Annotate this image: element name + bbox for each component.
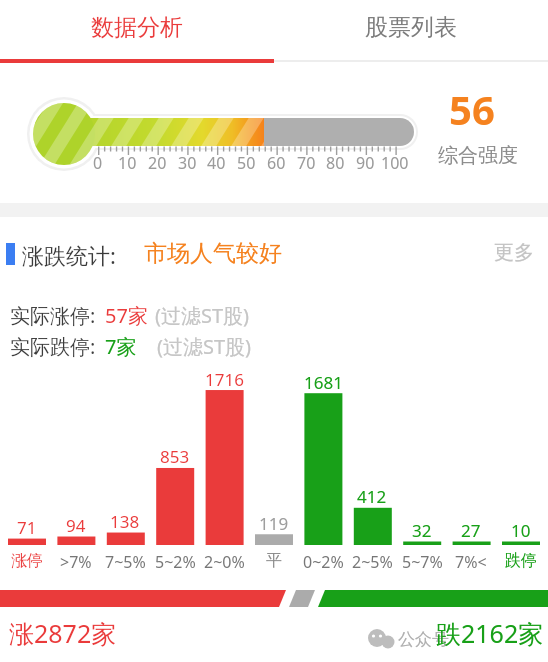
staticText: 综合强度 xyxy=(438,143,518,168)
staticText: 7家 xyxy=(105,333,137,360)
staticText: 70 xyxy=(297,152,316,174)
staticText: 100 xyxy=(381,152,409,174)
staticText: 94 xyxy=(66,514,86,537)
staticText: 40 xyxy=(207,152,226,174)
staticText: >7% xyxy=(60,551,92,573)
staticText: 27 xyxy=(461,519,481,542)
staticText: 30 xyxy=(178,152,197,174)
staticText: 5~7% xyxy=(402,551,443,573)
staticText: (过滤ST股) xyxy=(155,302,250,329)
staticText: 平 xyxy=(266,551,282,571)
staticText: 71 xyxy=(17,516,37,539)
staticText: 涨2872家 xyxy=(9,616,117,650)
staticText: 10 xyxy=(118,152,137,174)
staticText: 7%< xyxy=(455,551,487,573)
staticText: 股票列表 xyxy=(365,13,457,42)
staticText: 20 xyxy=(148,152,167,174)
staticText: 涨跌统计: xyxy=(22,240,116,270)
staticText: 数据分析 xyxy=(91,13,183,42)
staticText: 跌2162家 xyxy=(436,616,544,650)
button[interactable]: 更多 xyxy=(484,238,544,266)
staticText: 60 xyxy=(267,152,286,174)
staticText: 0~2% xyxy=(303,551,344,573)
staticText: (过滤ST股) xyxy=(157,333,252,360)
staticText: 更多 xyxy=(494,240,534,265)
staticText: 57家 xyxy=(105,302,148,329)
staticText: 10 xyxy=(511,519,531,542)
staticText: 412 xyxy=(357,485,387,508)
button[interactable]: 数据分析 xyxy=(0,0,274,54)
staticText: 80 xyxy=(326,152,345,174)
staticText: 1681 xyxy=(304,371,343,394)
staticText: 56 xyxy=(449,82,495,136)
staticText: 跌停 xyxy=(505,551,537,571)
staticText: 实际涨停: xyxy=(10,302,96,329)
staticText: 32 xyxy=(412,519,432,542)
staticText: 实际跌停: xyxy=(10,333,96,360)
staticText: 90 xyxy=(356,152,375,174)
staticText: 5~2% xyxy=(155,551,196,573)
staticText: 7~5% xyxy=(105,551,146,573)
staticText: 50 xyxy=(237,152,256,174)
staticText: 市场人气较好 xyxy=(144,239,282,268)
staticText: 1716 xyxy=(205,368,244,391)
staticText: 涨停 xyxy=(11,551,43,571)
staticText: 2~5% xyxy=(352,551,393,573)
staticText: 0 xyxy=(93,152,103,174)
button[interactable]: 股票列表 xyxy=(274,0,548,54)
staticText: 2~0% xyxy=(204,551,245,573)
staticText: 公众号 xyxy=(398,629,449,650)
staticText: 138 xyxy=(110,510,140,533)
staticText: 853 xyxy=(160,445,190,468)
staticText: 119 xyxy=(259,512,289,535)
